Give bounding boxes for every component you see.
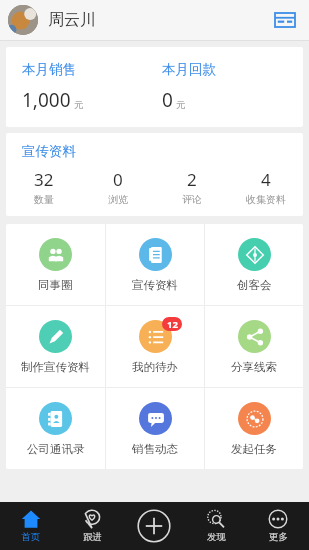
staticText: 0 [113, 168, 123, 191]
button[interactable]: 跟进 [61, 502, 123, 550]
staticText: 创客会 [237, 278, 272, 292]
button[interactable]: 2 [155, 168, 229, 206]
staticText: 发起任务 [231, 442, 277, 456]
staticText: 数量 [34, 193, 54, 206]
button[interactable]: 发起任务 [205, 388, 303, 469]
staticText: 2 [187, 168, 197, 191]
staticText: 同事圈 [38, 278, 73, 292]
button[interactable]: 12 [106, 306, 204, 387]
staticText: 浏览 [108, 193, 128, 206]
staticText: 4 [261, 168, 271, 191]
staticText: 周云川 [48, 10, 96, 30]
staticText: 发现 [207, 531, 226, 543]
staticText: 12 [167, 318, 178, 331]
staticText: 0 [162, 87, 173, 113]
staticText: 本月回款 [162, 61, 216, 78]
button[interactable]: 分享线索 [205, 306, 303, 387]
staticText: 跟进 [83, 531, 102, 543]
button[interactable]: 首页 [0, 502, 61, 550]
button[interactable]: 本月回款 [162, 61, 303, 113]
button[interactable]: 宣传资料 [106, 224, 204, 305]
button[interactable]: 制作宣传资料 [6, 306, 105, 387]
staticText: 分享线索 [231, 360, 277, 374]
staticText: 首页 [21, 531, 40, 543]
staticText: 元 [74, 99, 84, 111]
button[interactable]: 销售动态 [106, 388, 204, 469]
button[interactable]: 4 [229, 168, 303, 206]
button[interactable]: Business card [269, 4, 301, 36]
button[interactable]: 0 [81, 168, 155, 206]
button[interactable]: 发现 [185, 502, 247, 550]
staticText: 1,000 [22, 87, 71, 113]
button[interactable]: 公司通讯录 [6, 388, 105, 469]
button[interactable]: Profile avatar [8, 5, 38, 35]
button[interactable]: 同事圈 [6, 224, 105, 305]
staticText: 更多 [269, 531, 288, 543]
staticText: 本月销售 [22, 61, 76, 78]
staticText: 制作宣传资料 [21, 360, 90, 374]
button[interactable]: 创客会 [205, 224, 303, 305]
button[interactable]: Add [123, 502, 185, 550]
button[interactable]: 32 [6, 168, 81, 206]
button[interactable]: 本月销售 [22, 61, 162, 113]
staticText: 收集资料 [246, 193, 286, 206]
staticText: 宣传资料 [22, 143, 76, 160]
button[interactable]: 更多 [247, 502, 309, 550]
staticText: 我的待办 [132, 360, 178, 374]
staticText: 32 [34, 168, 54, 191]
staticText: 公司通讯录 [27, 442, 85, 456]
staticText: 元 [176, 99, 186, 111]
staticText: 评论 [182, 193, 202, 206]
staticText: 宣传资料 [132, 278, 178, 292]
staticText: 销售动态 [132, 442, 178, 456]
